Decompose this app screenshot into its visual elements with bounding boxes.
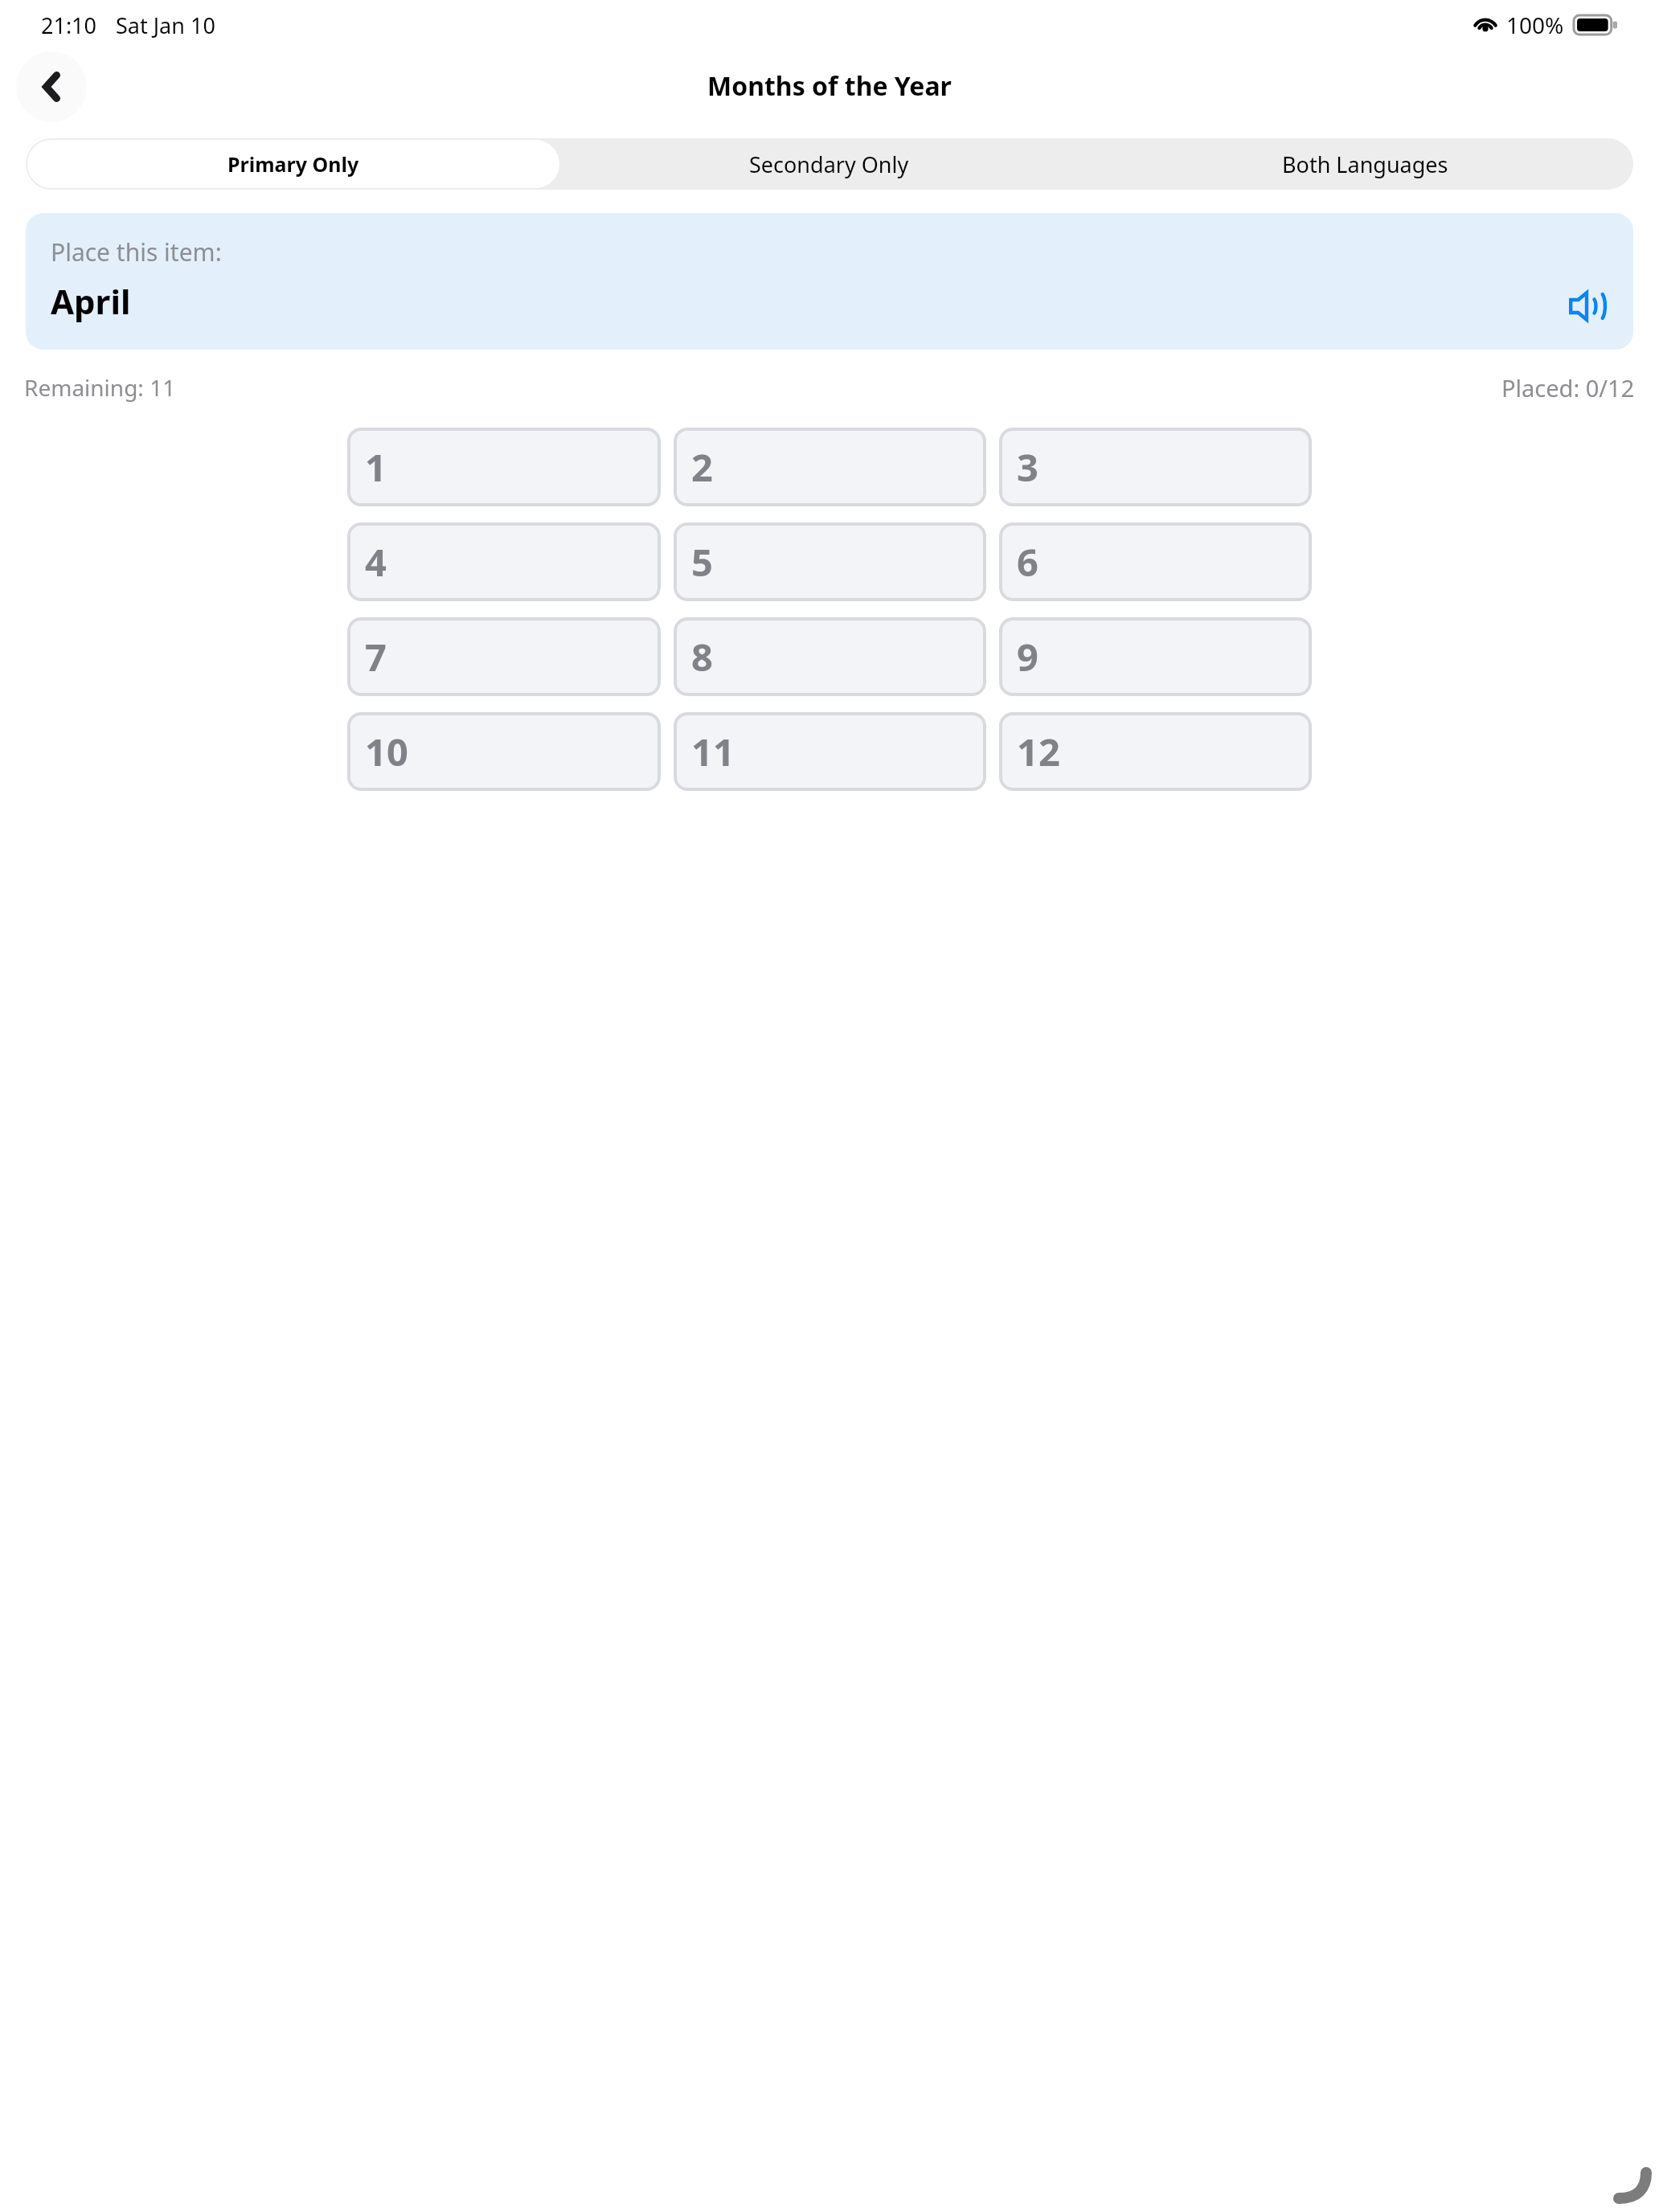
button[interactable]: 4 [347, 522, 661, 601]
staticText: Placed: 0/12 [1501, 372, 1635, 403]
button[interactable]: 6 [999, 522, 1312, 601]
button[interactable]: 2 [674, 428, 986, 506]
staticText: Months of the Year [707, 68, 952, 104]
staticText: Place this item: [51, 236, 222, 268]
staticText: Primary Only [227, 150, 359, 178]
staticText: 5 [691, 536, 713, 588]
staticText: 12 [1017, 726, 1060, 777]
button[interactable]: Back [16, 51, 87, 122]
staticText: April [51, 278, 131, 324]
staticText: 7 [365, 631, 387, 682]
staticText: 6 [1017, 536, 1038, 588]
staticText: 9 [1017, 631, 1038, 682]
button[interactable]: 10 [347, 712, 661, 791]
button[interactable]: Play pronunciation [1563, 280, 1616, 333]
staticText: 100% [1506, 10, 1564, 40]
staticText: 3 [1017, 441, 1038, 493]
button[interactable]: Primary Only [27, 140, 559, 188]
staticText: 4 [365, 536, 387, 588]
staticText: 8 [691, 631, 713, 682]
staticText: Remaining: 11 [24, 372, 176, 403]
staticText: 10 [365, 726, 408, 777]
staticText: 1 [365, 441, 387, 493]
button[interactable]: 8 [674, 617, 986, 696]
staticText: 11 [691, 726, 735, 777]
button[interactable]: Both Languages [1099, 140, 1632, 188]
button[interactable]: 5 [674, 522, 986, 601]
button[interactable]: 3 [999, 428, 1312, 506]
button[interactable]: 11 [674, 712, 986, 791]
button[interactable]: Secondary Only [563, 140, 1096, 188]
button[interactable]: 12 [999, 712, 1312, 791]
button[interactable]: 7 [347, 617, 661, 696]
staticText: Sat Jan 10 [116, 10, 215, 40]
staticText: Secondary Only [749, 150, 909, 179]
staticText: 21:10 [41, 10, 97, 40]
button[interactable]: 1 [347, 428, 661, 506]
button[interactable]: 9 [999, 617, 1312, 696]
staticText: 2 [691, 441, 713, 493]
staticText: Both Languages [1282, 150, 1448, 179]
